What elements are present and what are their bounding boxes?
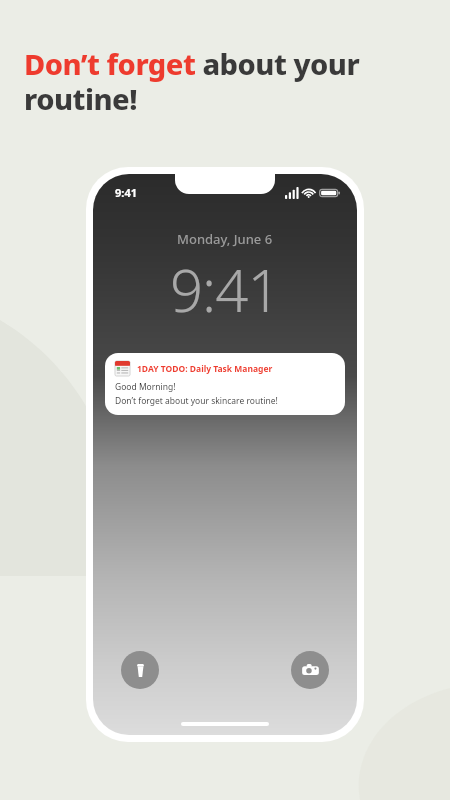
button[interactable]: 1DAY TODO: Daily Task Manager: [105, 353, 345, 415]
button[interactable]: Camera: [291, 651, 329, 689]
staticText: 9:41: [115, 185, 137, 200]
staticText: Don’t forget about your skincare routine…: [115, 395, 278, 407]
staticText: Good Morning!: [115, 381, 176, 393]
staticText: Monday, June 6: [177, 230, 273, 248]
staticText: 9:41: [170, 250, 280, 329]
button[interactable]: Flashlight: [121, 651, 159, 689]
staticText: 1DAY TODO: Daily Task Manager: [137, 363, 273, 375]
staticText: Don’t forget about your routine!: [24, 44, 434, 119]
